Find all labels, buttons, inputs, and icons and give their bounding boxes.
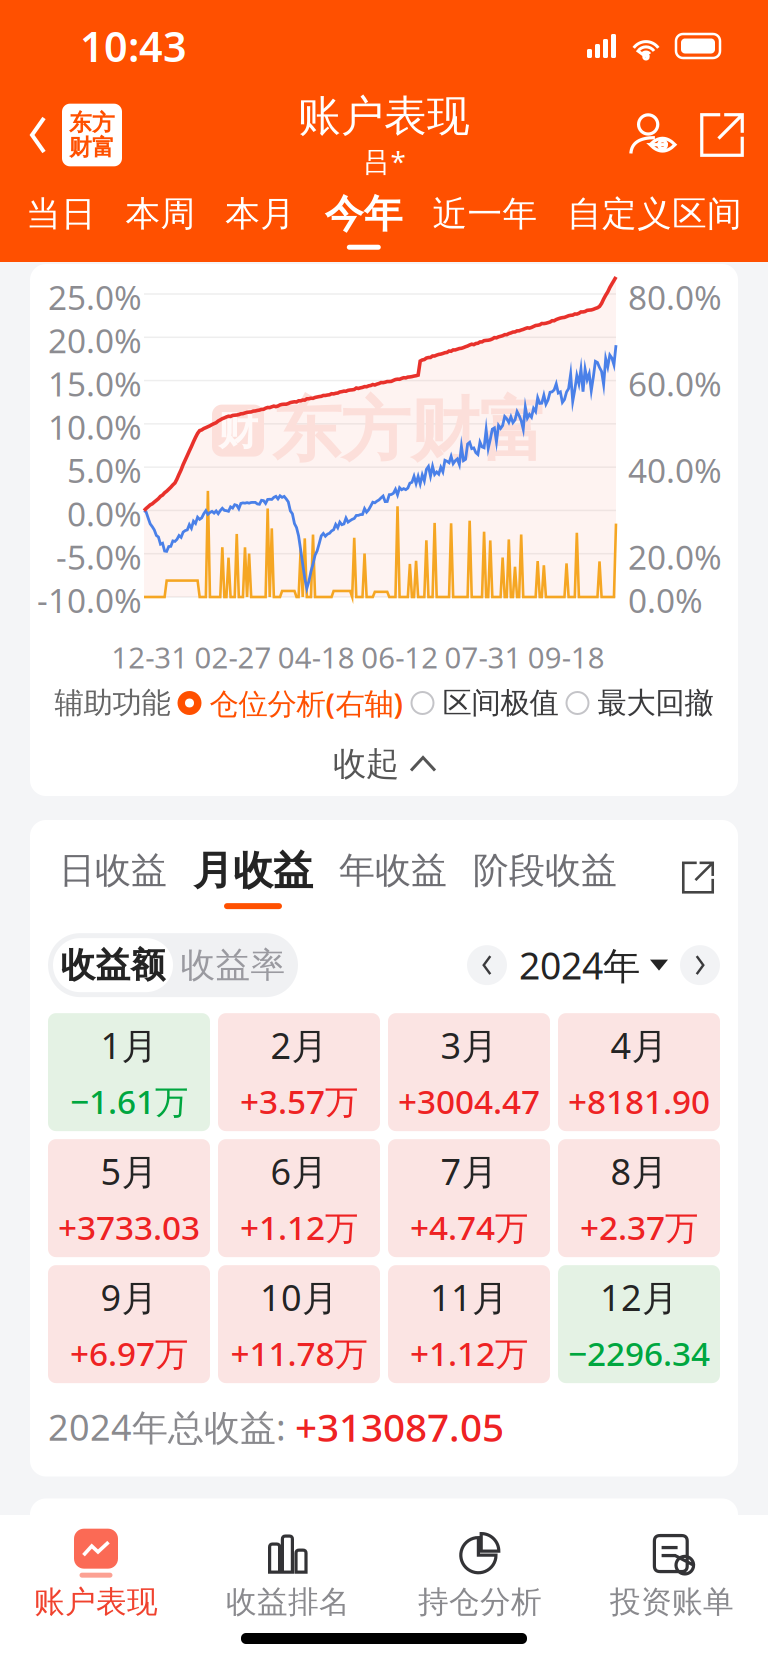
button[interactable]: 5月 [48,1139,210,1257]
staticText: 10月 [260,1273,338,1321]
staticText: 当日 [26,193,96,235]
button[interactable]: 自定义区间 [567,178,742,262]
staticText: 今年 [325,190,403,238]
staticText: 日收益 [59,848,167,893]
button[interactable]: Account [614,92,690,178]
staticText: 本月 [225,193,295,235]
button[interactable]: Share [674,862,722,894]
button[interactable]: 6月 [218,1139,380,1257]
staticText: 07-31 [444,637,521,676]
staticText: 20.0% [628,535,722,579]
button[interactable]: 收益排名 [192,1529,384,1621]
staticText: +3004.47 [398,1079,540,1123]
staticText: +3.57万 [240,1079,358,1123]
staticText: 2024年总收益: [48,1403,295,1451]
staticText: 04-18 [278,637,355,676]
button[interactable]: 近一年 [432,178,537,262]
staticText: 账户表现 [298,90,470,143]
button[interactable]: 区间极值 [411,685,558,721]
staticText: 阶段收益 [473,848,617,893]
staticText: +313087.05 [295,1401,504,1452]
staticText: 2月 [270,1021,327,1069]
staticText: 40.0% [628,448,722,492]
button[interactable]: 8月 [558,1139,720,1257]
button[interactable]: 2月 [218,1013,380,1131]
staticText: 7月 [440,1147,497,1195]
button[interactable]: 7月 [388,1139,550,1257]
staticText: 自定义区间 [567,193,742,235]
staticText: 8月 [610,1147,667,1195]
staticText: 仓位分析(右轴) [209,683,403,722]
button[interactable]: 阶段收益 [460,848,630,907]
button[interactable]: 持仓分析 [384,1529,576,1621]
staticText: 10:43 [80,19,187,73]
staticText: +1.12万 [240,1205,358,1249]
staticText: -10.0% [37,578,142,622]
staticText: 东方财富 [272,388,548,473]
button[interactable]: 10月 [218,1265,380,1383]
staticText: +6.97万 [70,1331,188,1375]
staticText: −2296.34 [568,1331,710,1375]
button[interactable]: 日收益 [46,848,180,907]
staticText: 0.0% [67,491,142,536]
staticText: +11.78万 [230,1331,367,1375]
button[interactable]: 收起 [30,732,738,796]
staticText: 5.0% [67,448,142,492]
staticText: 辅助功能 [54,685,170,721]
button[interactable]: 本周 [126,178,196,262]
button[interactable]: 9月 [48,1265,210,1383]
staticText: 12月 [600,1273,678,1321]
staticText: -5.0% [56,535,142,579]
staticText: 收起 [333,743,399,784]
button[interactable]: Share [690,92,754,178]
button[interactable]: Next year [680,945,720,985]
button[interactable]: 仓位分析(右轴) [178,683,403,722]
staticText: 持仓分析 [418,1583,542,1621]
staticText: 20.0% [48,318,142,362]
staticText: 收益额 [60,944,165,986]
button[interactable]: 4月 [558,1013,720,1131]
button[interactable]: 3月 [388,1013,550,1131]
staticText: 02-27 [194,637,271,676]
staticText: +4.74万 [410,1205,528,1249]
button[interactable]: 收益额 [53,938,173,992]
staticText: 收益排名 [226,1583,350,1621]
staticText: 2024年 [519,940,640,990]
staticText: 09-18 [528,637,605,676]
button[interactable]: 投资账单 [576,1529,768,1621]
button[interactable]: 最大回撤 [566,685,713,721]
staticText: 3月 [440,1021,497,1069]
staticText: +8181.90 [568,1079,710,1123]
staticText: 最大回撤 [597,685,713,721]
staticText: 收益率 [180,944,285,986]
button[interactable]: 本月 [225,178,295,262]
staticText: 吕* [362,143,405,180]
staticText: −1.61万 [70,1079,188,1123]
button[interactable]: 今年 [325,178,403,262]
staticText: 06-12 [361,637,438,676]
staticText: 0.0% [628,578,703,622]
staticText: 4月 [610,1021,667,1069]
staticText: 年收益 [339,848,447,893]
staticText: 东方 [69,109,115,136]
staticText: 60.0% [628,361,722,406]
staticText: 月收益 [193,846,313,895]
button[interactable]: 1月 [48,1013,210,1131]
staticText: 财富 [69,133,115,161]
staticText: 近一年 [432,193,537,235]
button[interactable]: 11月 [388,1265,550,1383]
button[interactable]: Previous year [467,945,507,985]
staticText: 投资账单 [610,1583,734,1621]
button[interactable]: 12月 [558,1265,720,1383]
button[interactable]: 月收益 [180,846,326,909]
staticText: 9月 [100,1273,157,1321]
button[interactable]: 账户表现 [0,1529,192,1621]
button[interactable]: 收益率 [173,938,293,992]
button[interactable]: 年收益 [326,848,460,907]
button[interactable]: 东方 [0,92,122,178]
staticText: 15.0% [48,361,142,406]
staticText: 账户表现 [34,1583,158,1621]
staticText: 80.0% [628,275,722,319]
staticText: +3733.03 [58,1205,200,1249]
button[interactable]: 当日 [26,178,96,262]
